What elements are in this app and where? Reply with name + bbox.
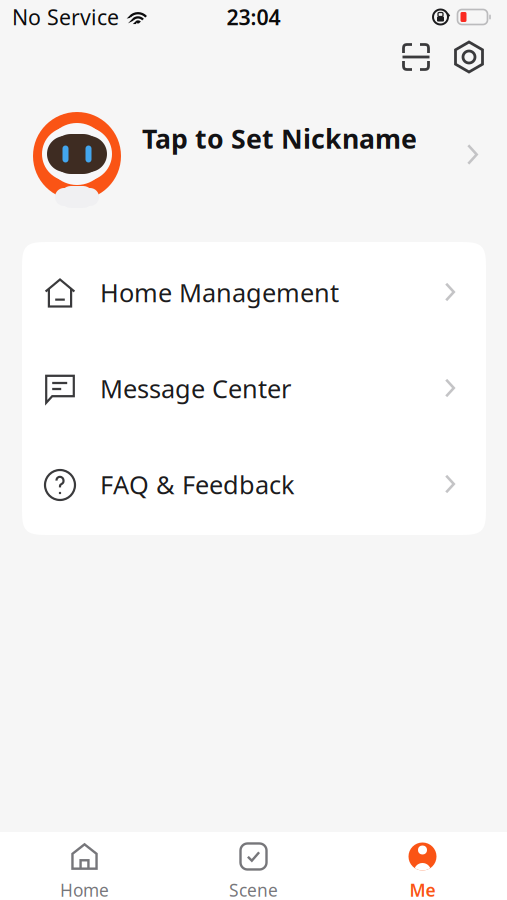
staticText: Home	[60, 878, 109, 900]
button[interactable]: Me	[338, 827, 507, 900]
button[interactable]: FAQ & Feedback	[22, 436, 486, 532]
staticText: No Service	[12, 3, 119, 31]
staticText: Tap to Set Nickname	[142, 121, 417, 156]
button[interactable]: Home Management	[22, 244, 486, 340]
button[interactable]: Settings	[447, 35, 491, 79]
staticText: FAQ & Feedback	[100, 468, 295, 501]
staticText: 23:04	[226, 3, 280, 31]
staticText: Message Center	[100, 372, 291, 405]
button[interactable]: Home	[0, 827, 169, 900]
button[interactable]: Scene	[169, 827, 338, 900]
staticText: Me	[409, 878, 435, 900]
button[interactable]: Scan	[394, 35, 438, 79]
button[interactable]: Tap to Set Nickname	[0, 108, 507, 204]
button[interactable]: Message Center	[22, 340, 486, 436]
staticText: Home Management	[100, 276, 339, 309]
staticText: Scene	[229, 878, 278, 900]
